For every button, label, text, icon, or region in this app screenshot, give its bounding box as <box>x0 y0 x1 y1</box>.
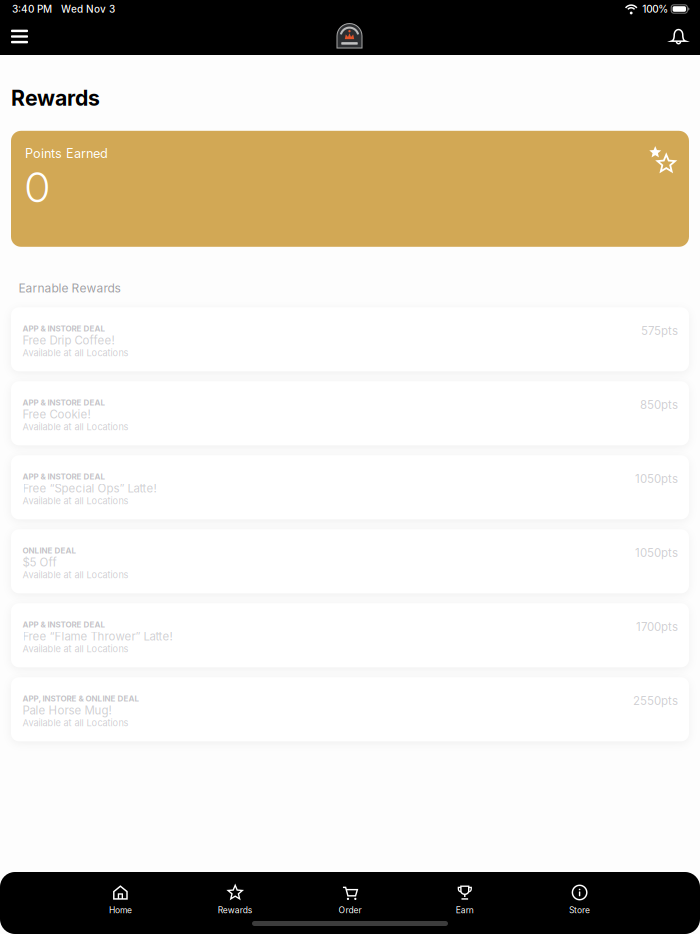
staticText: Available at all Locations <box>22 421 128 432</box>
button[interactable]: APP & INSTORE DEAL <box>11 603 689 667</box>
staticText: Available at all Locations <box>22 569 128 580</box>
staticText: 3:40 PM <box>12 3 52 15</box>
staticText: Earn <box>456 905 474 915</box>
staticText: Available at all Locations <box>22 643 128 654</box>
button[interactable]: Order <box>293 883 407 917</box>
staticText: APP & INSTORE DEAL <box>22 398 105 407</box>
staticText: Order <box>338 905 361 915</box>
staticText: APP & INSTORE DEAL <box>22 472 105 481</box>
button[interactable]: Rewards <box>178 883 293 917</box>
staticText: Wed Nov 3 <box>61 3 115 15</box>
staticText: $5 Off <box>22 555 56 569</box>
button[interactable]: APP & INSTORE DEAL <box>11 455 689 519</box>
staticText: Free “Special Ops” Latte! <box>22 481 156 495</box>
staticText: 1050pts <box>635 546 678 560</box>
staticText: ONLINE DEAL <box>22 546 76 555</box>
staticText: Available at all Locations <box>22 495 128 506</box>
staticText: APP, INSTORE & ONLINE DEAL <box>22 694 139 703</box>
staticText: Earnable Rewards <box>18 281 120 295</box>
staticText: Store <box>569 905 590 915</box>
staticText: 1050pts <box>635 472 678 486</box>
staticText: Free “Flame Thrower” Latte! <box>22 629 172 643</box>
staticText: Rewards <box>218 905 253 915</box>
staticText: 2550pts <box>633 694 678 708</box>
button[interactable]: ONLINE DEAL <box>11 529 689 593</box>
button[interactable]: Notifications <box>649 18 700 55</box>
staticText: Rewards <box>11 85 100 111</box>
button[interactable]: Home <box>63 883 178 917</box>
button[interactable]: APP, INSTORE & ONLINE DEAL <box>11 677 689 741</box>
staticText: Free Cookie! <box>22 407 90 421</box>
button[interactable]: Earn <box>407 883 522 917</box>
staticText: Available at all Locations <box>22 717 128 728</box>
button[interactable]: Menu <box>0 18 50 55</box>
staticText: APP & INSTORE DEAL <box>22 324 105 333</box>
staticText: Free Drip Coffee! <box>22 333 114 347</box>
staticText: APP & INSTORE DEAL <box>22 620 105 629</box>
staticText: 100% <box>642 3 668 15</box>
button[interactable]: APP & INSTORE DEAL <box>11 307 689 371</box>
staticText: 0 <box>25 162 50 212</box>
staticText: 850pts <box>640 398 678 412</box>
staticText: Points Earned <box>25 146 108 161</box>
staticText: 575pts <box>641 324 678 338</box>
staticText: Pale Horse Mug! <box>22 703 111 717</box>
staticText: Available at all Locations <box>22 347 128 358</box>
button[interactable]: Store <box>522 883 637 917</box>
button[interactable]: APP & INSTORE DEAL <box>11 381 689 445</box>
staticText: 1700pts <box>636 620 678 634</box>
staticText: Home <box>109 905 132 915</box>
